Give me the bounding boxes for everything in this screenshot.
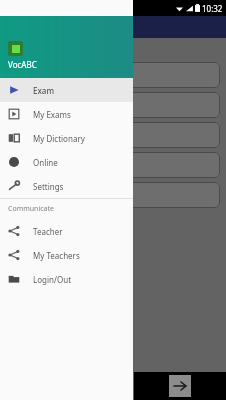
button[interactable]: Online [0,150,133,174]
staticText: My Exams [33,109,71,120]
button[interactable]: Login/Out [0,267,133,291]
button[interactable]: son [6,182,220,208]
staticText: VocABC [8,59,37,70]
button[interactable]: daughter [6,152,220,178]
staticText: My Teachers [33,250,80,261]
button[interactable]: wife [6,62,220,88]
staticText: Exam [33,85,54,96]
button[interactable]: Settings [0,174,133,198]
button[interactable]: Exam [0,78,133,102]
button[interactable]: My Exams [0,102,133,126]
staticText: Online [33,157,58,168]
button[interactable]: spouse [6,92,220,118]
button[interactable]: Next [169,375,191,397]
button[interactable]: Teacher [0,219,133,243]
staticText: Settings [33,181,64,192]
staticText: My Dictionary [33,133,85,144]
button[interactable]: good [6,122,220,148]
button[interactable]: My Teachers [0,243,133,267]
staticText: Login/Out [33,274,72,285]
staticText: son [105,189,121,201]
staticText: spouse [98,99,129,111]
button[interactable]: My Dictionary [0,126,133,150]
staticText: Teacher [33,226,63,237]
staticText: wife [104,69,122,81]
staticText: 10:32 [202,3,223,14]
staticText: Communicate [8,204,54,214]
